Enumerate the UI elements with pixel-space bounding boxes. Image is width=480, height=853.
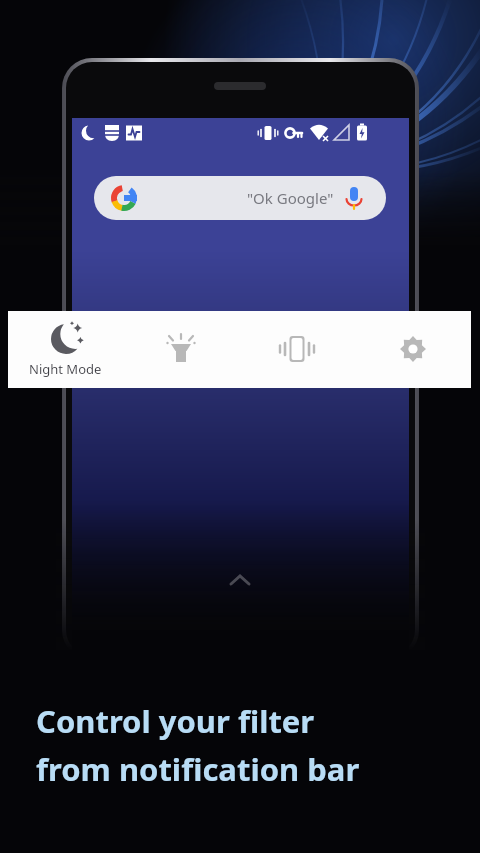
button[interactable]: Night Mode xyxy=(8,311,123,388)
button[interactable]: Vibrate xyxy=(239,311,355,388)
button[interactable]: Flashlight xyxy=(123,311,239,388)
staticText: from notification bar xyxy=(36,748,360,790)
staticText: "Ok Google" xyxy=(247,188,334,208)
staticText: Control your filter xyxy=(36,700,315,742)
button[interactable]: Settings xyxy=(355,311,471,388)
button[interactable]: Google search xyxy=(94,176,386,220)
staticText: Night Mode xyxy=(29,360,102,378)
